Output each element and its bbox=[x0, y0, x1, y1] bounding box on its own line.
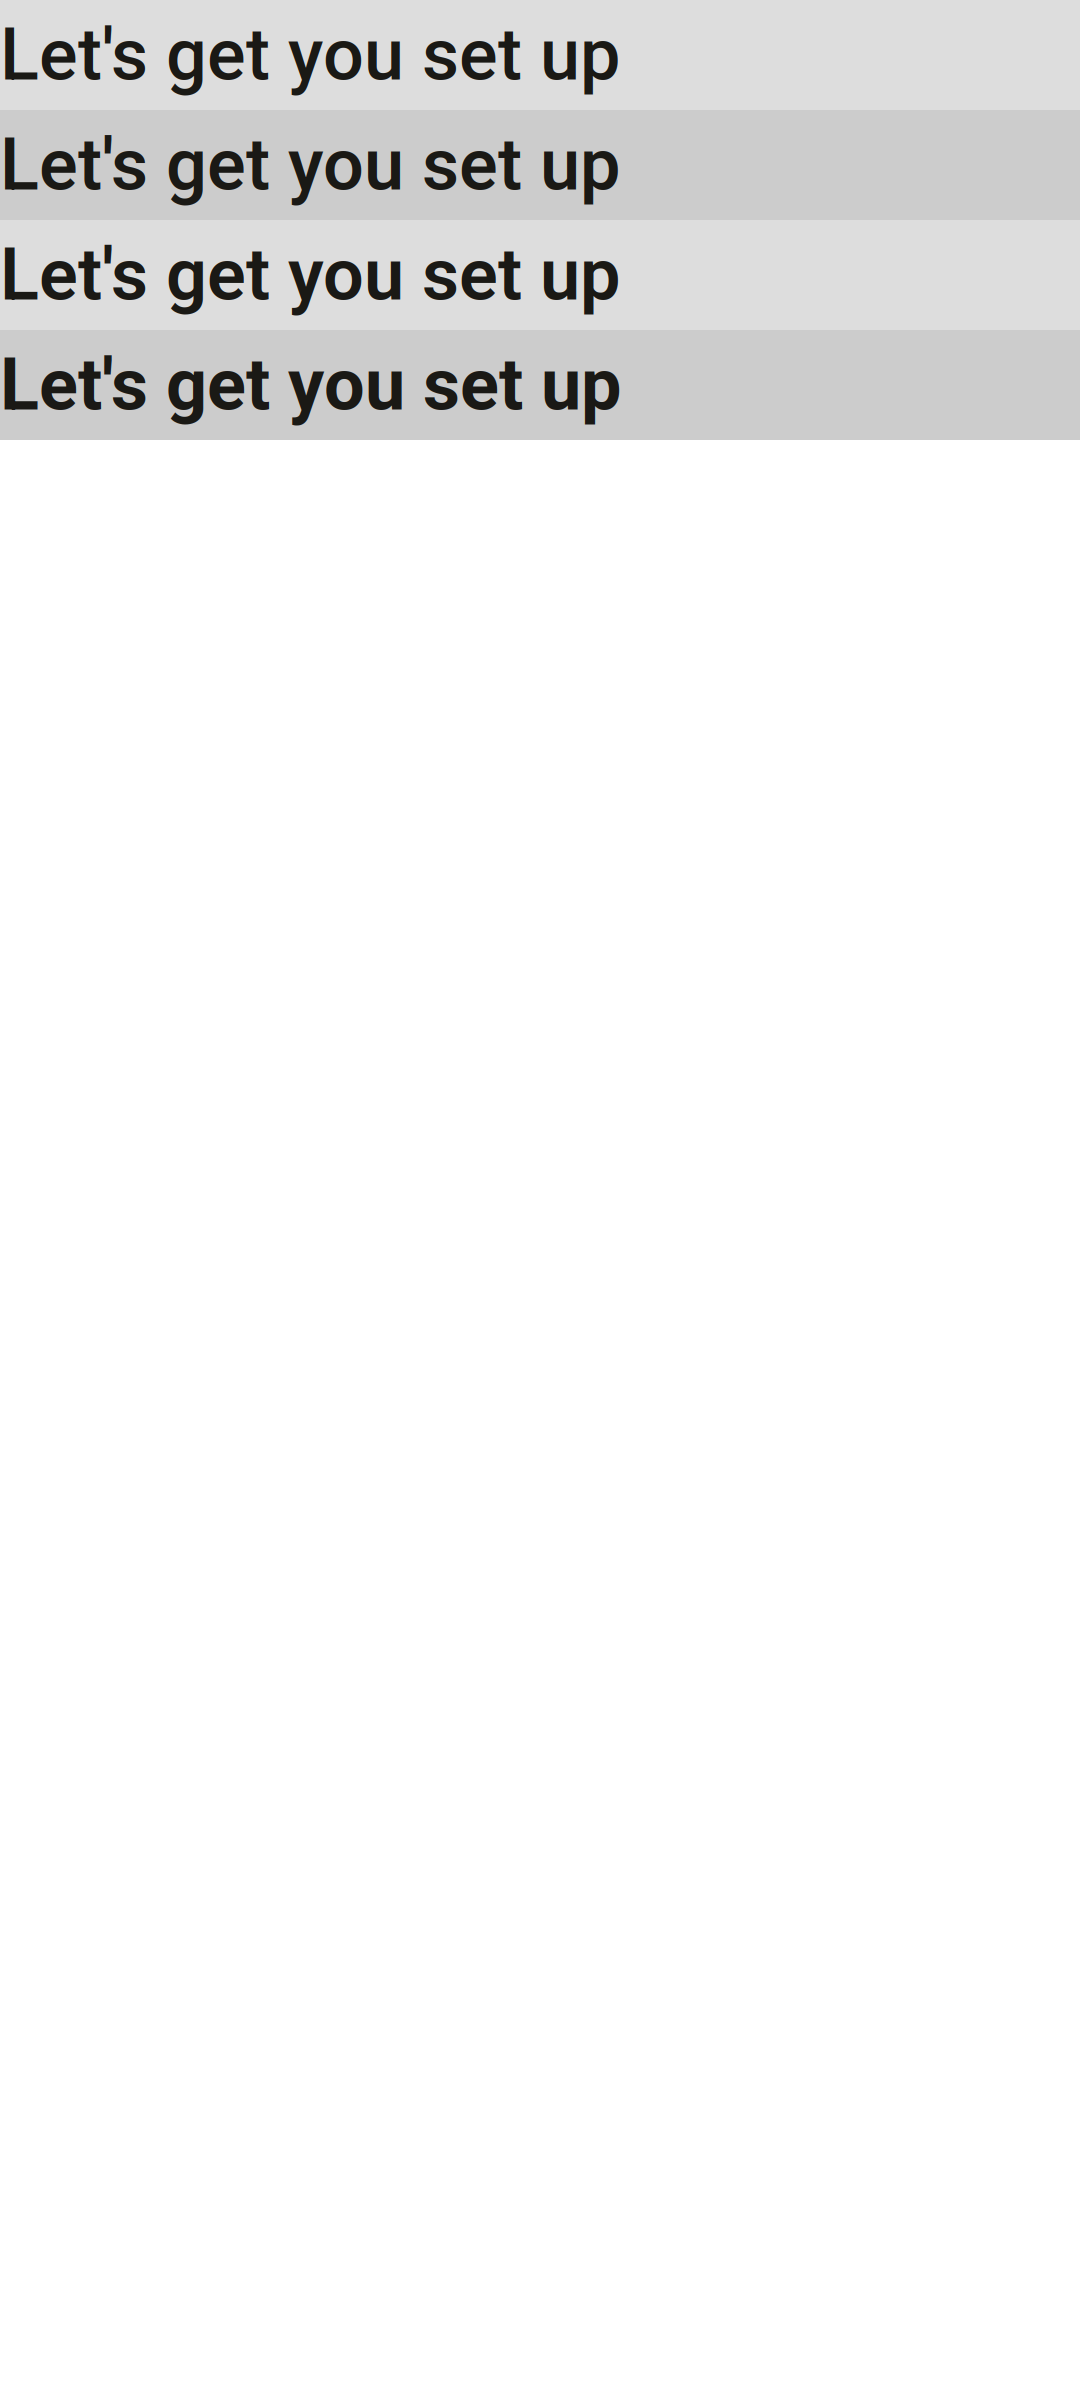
staticText: Let's get you set up bbox=[0, 233, 621, 317]
staticText: Let's get you set up bbox=[0, 343, 622, 427]
staticText: Let's get you set up bbox=[0, 13, 620, 97]
staticText: Let's get you set up bbox=[0, 123, 620, 207]
